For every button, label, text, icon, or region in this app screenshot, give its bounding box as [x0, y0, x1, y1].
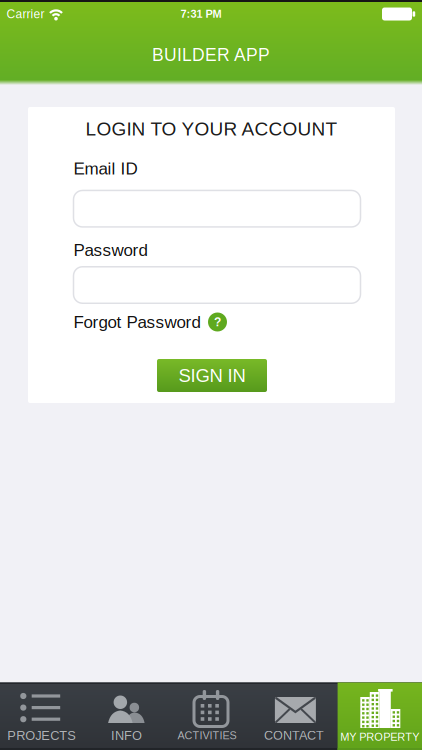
button[interactable]: ACTIVITIES — [169, 682, 253, 750]
staticText: Email ID — [73, 159, 137, 178]
button[interactable]: SIGN IN — [157, 359, 267, 392]
staticText: SIGN IN — [178, 365, 245, 386]
staticText: CONTACT — [264, 728, 324, 743]
button[interactable]: PROJECTS — [0, 682, 84, 750]
staticText: BUILDER APP — [152, 45, 270, 65]
button[interactable]: MY PROPERTY — [338, 682, 422, 750]
staticText: MY PROPERTY — [340, 731, 419, 743]
staticText: Forgot Password — [73, 312, 200, 331]
staticText: PROJECTS — [7, 728, 76, 743]
staticText: INFO — [111, 728, 142, 743]
button[interactable]: Password — [73, 267, 360, 303]
staticText: 7:31 PM — [180, 8, 221, 20]
button[interactable]: Email ID — [73, 190, 360, 227]
button[interactable]: Forgot Password — [73, 310, 293, 334]
staticText: Password — [73, 240, 147, 259]
button[interactable]: INFO — [84, 682, 169, 750]
staticText: Carrier — [6, 7, 44, 21]
button[interactable]: CONTACT — [253, 682, 338, 750]
staticText: LOGIN TO YOUR ACCOUNT — [85, 118, 337, 140]
staticText: ? — [214, 315, 221, 329]
staticText: ACTIVITIES — [177, 729, 236, 742]
